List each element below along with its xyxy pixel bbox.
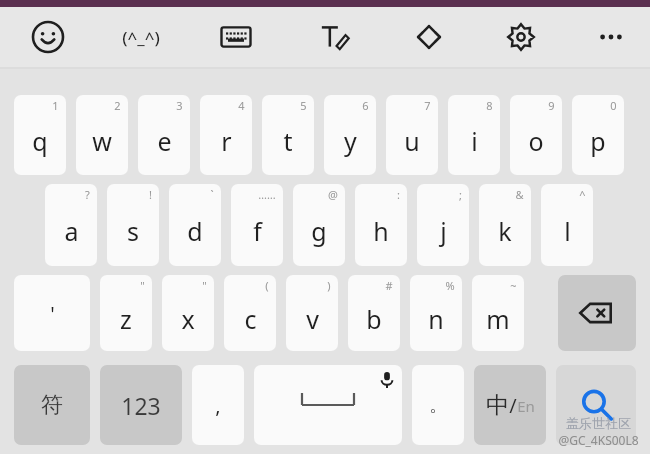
button[interactable]: 9 bbox=[510, 95, 562, 175]
button[interactable]: ? bbox=[45, 184, 97, 266]
button[interactable]: 123 bbox=[100, 365, 182, 445]
staticText: a bbox=[64, 214, 79, 248]
button[interactable]: Settings bbox=[496, 12, 546, 62]
staticText: y bbox=[344, 124, 357, 158]
button[interactable]: # bbox=[348, 275, 400, 351]
staticText: ^ bbox=[579, 187, 586, 202]
staticText: 3 bbox=[176, 98, 183, 113]
staticText: & bbox=[515, 187, 524, 202]
button[interactable]: Search bbox=[556, 365, 636, 445]
staticText: l bbox=[564, 214, 571, 248]
button[interactable]: Emoji bbox=[23, 12, 73, 62]
staticText: 9 bbox=[548, 98, 555, 113]
staticText: 中 bbox=[486, 391, 509, 420]
button[interactable]: 2 bbox=[76, 95, 128, 175]
button[interactable]: Kaomoji bbox=[116, 12, 166, 62]
staticText: 123 bbox=[121, 390, 161, 421]
staticText: h bbox=[373, 214, 389, 248]
staticText: ? bbox=[85, 187, 90, 202]
button[interactable]: ; bbox=[417, 184, 469, 266]
staticText: " bbox=[140, 278, 145, 293]
button[interactable]: % bbox=[410, 275, 462, 351]
staticText: 盖乐世社区 bbox=[566, 415, 631, 431]
button[interactable]: Keyboard layout bbox=[211, 12, 261, 62]
button[interactable]: ^ bbox=[541, 184, 593, 266]
button[interactable]: 3 bbox=[138, 95, 190, 175]
staticText: f bbox=[253, 214, 262, 248]
button[interactable]: ( bbox=[224, 275, 276, 351]
staticText: ; bbox=[459, 187, 462, 202]
staticText: t bbox=[283, 124, 293, 158]
staticText: z bbox=[120, 302, 132, 336]
staticText: ~ bbox=[510, 278, 517, 293]
staticText: j bbox=[440, 214, 447, 248]
button[interactable]: , bbox=[192, 365, 244, 445]
button[interactable]: 7 bbox=[386, 95, 438, 175]
staticText: k bbox=[498, 214, 512, 248]
staticText: x bbox=[181, 302, 195, 336]
button[interactable]: 4 bbox=[200, 95, 252, 175]
button[interactable]: Space bbox=[254, 365, 402, 445]
staticText: @GC_4KS00L8 bbox=[558, 432, 639, 448]
staticText: : bbox=[397, 187, 400, 202]
button[interactable]: : bbox=[355, 184, 407, 266]
staticText: …… bbox=[258, 187, 276, 202]
staticText: 5 bbox=[300, 98, 307, 113]
staticText: ) bbox=[327, 278, 331, 293]
button[interactable]: ! bbox=[107, 184, 159, 266]
staticText: m bbox=[486, 302, 510, 336]
staticText: q bbox=[32, 124, 48, 158]
staticText: 2 bbox=[114, 98, 121, 113]
staticText: , bbox=[215, 392, 221, 419]
staticText: ( bbox=[265, 278, 269, 293]
staticText: e bbox=[157, 124, 172, 158]
staticText: % bbox=[445, 278, 455, 293]
staticText: # bbox=[385, 278, 393, 293]
button[interactable]: ) bbox=[286, 275, 338, 351]
button[interactable]: 8 bbox=[448, 95, 500, 175]
button[interactable]: Handwriting bbox=[309, 12, 359, 62]
staticText: En bbox=[517, 396, 535, 416]
button[interactable]: Backspace bbox=[558, 275, 636, 351]
button[interactable]: 1 bbox=[14, 95, 66, 175]
button[interactable]: 0 bbox=[572, 95, 624, 175]
staticText: b bbox=[366, 302, 382, 336]
button[interactable]: 5 bbox=[262, 95, 314, 175]
staticText: 。 bbox=[429, 394, 447, 417]
button[interactable]: 6 bbox=[324, 95, 376, 175]
staticText: 1 bbox=[52, 98, 59, 113]
button[interactable]: More options bbox=[586, 12, 636, 62]
staticText: ' bbox=[50, 300, 55, 327]
staticText: 8 bbox=[486, 98, 493, 113]
button[interactable]: ~ bbox=[472, 275, 524, 351]
button[interactable]: …… bbox=[231, 184, 283, 266]
staticText: / bbox=[509, 392, 517, 419]
staticText: c bbox=[244, 302, 257, 336]
button[interactable]: 符 bbox=[14, 365, 90, 445]
button[interactable]: 中 bbox=[474, 365, 546, 445]
staticText: 7 bbox=[424, 98, 431, 113]
button[interactable]: & bbox=[479, 184, 531, 266]
staticText: i bbox=[471, 124, 478, 158]
staticText: r bbox=[221, 124, 232, 158]
staticText: d bbox=[187, 214, 203, 248]
staticText: u bbox=[404, 124, 420, 158]
button[interactable]: ' bbox=[14, 275, 90, 351]
button[interactable]: " bbox=[162, 275, 214, 351]
staticText: 4 bbox=[238, 98, 245, 113]
staticText: 符 bbox=[41, 391, 63, 419]
staticText: g bbox=[311, 214, 327, 248]
button[interactable]: ` bbox=[169, 184, 221, 266]
button[interactable]: @ bbox=[293, 184, 345, 266]
staticText: w bbox=[92, 124, 112, 158]
staticText: s bbox=[127, 214, 139, 248]
button[interactable]: " bbox=[100, 275, 152, 351]
button[interactable]: 。 bbox=[412, 365, 464, 445]
staticText: @ bbox=[328, 187, 338, 202]
staticText: 6 bbox=[362, 98, 369, 113]
staticText: " bbox=[202, 278, 207, 293]
staticText: p bbox=[590, 124, 606, 158]
button[interactable]: Move cursor bbox=[404, 12, 454, 62]
staticText: ` bbox=[210, 187, 214, 202]
staticText: o bbox=[528, 124, 544, 158]
